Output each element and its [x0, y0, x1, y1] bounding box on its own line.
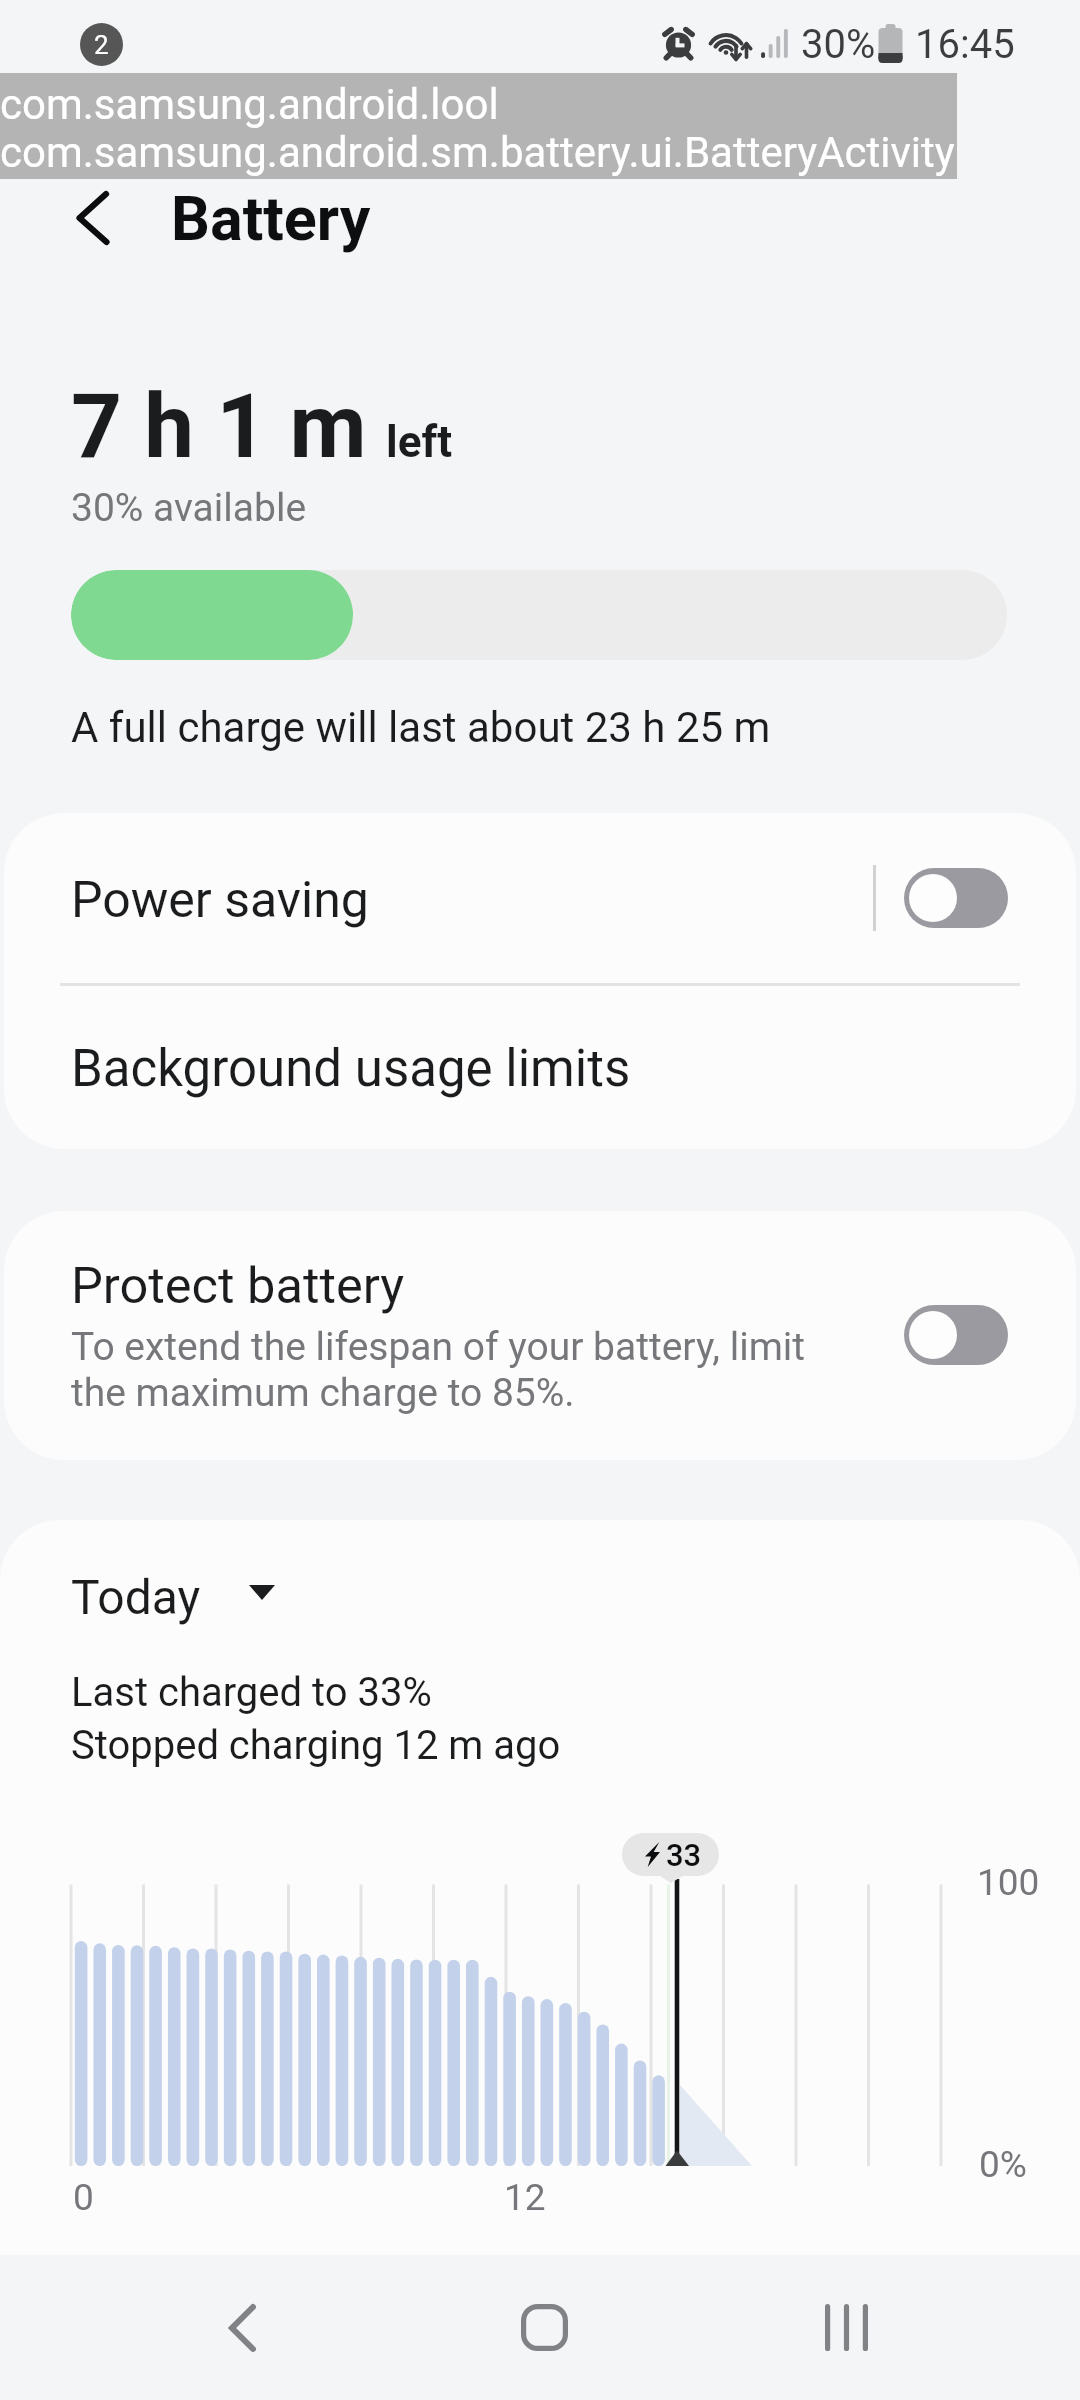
button[interactable]: Off — [904, 1305, 1008, 1365]
staticText: 0 — [73, 2176, 94, 2219]
staticText: Battery — [171, 183, 371, 254]
staticText: 30% available — [71, 485, 307, 531]
staticText: 12 — [504, 2176, 546, 2219]
button[interactable]: Home — [364, 2255, 724, 2400]
button[interactable]: Back — [62, 2255, 422, 2400]
staticText: 33 — [666, 1837, 702, 1873]
staticText: Stopped charging 12 m ago — [71, 1722, 561, 1769]
staticText: Last charged to 33% — [71, 1669, 432, 1716]
staticText: the maximum charge to 85%. — [71, 1370, 575, 1416]
button[interactable]: Off — [904, 868, 1008, 928]
staticText: 100 — [977, 1861, 1040, 1904]
staticText: Background usage limits — [71, 1039, 631, 1099]
staticText: 0% — [979, 2143, 1027, 2186]
staticText: 2 — [94, 30, 109, 60]
staticText: Today — [71, 1569, 201, 1625]
button[interactable]: Power saving — [4, 813, 1076, 983]
staticText: 7 h 1 m — [71, 374, 367, 478]
staticText: 30% — [801, 21, 876, 68]
staticText: A full charge will last about 23 h 25 m — [71, 703, 771, 752]
button[interactable]: Navigate up — [48, 172, 138, 262]
button[interactable]: Recent apps — [666, 2255, 1026, 2400]
staticText: com.samsung.android.sm.battery.ui.Batter… — [0, 128, 955, 177]
button[interactable]: Background usage limits — [4, 986, 1076, 1149]
staticText: com.samsung.android.lool — [0, 80, 499, 129]
staticText: Protect battery — [71, 1256, 405, 1315]
button[interactable]: Today — [56, 1560, 290, 1640]
staticText: To extend the lifespan of your battery, … — [71, 1324, 806, 1370]
button[interactable]: Protect battery — [4, 1211, 1076, 1460]
staticText: Power saving — [71, 871, 369, 930]
staticText: 16:45 — [915, 21, 1015, 68]
staticText: left — [386, 416, 453, 468]
